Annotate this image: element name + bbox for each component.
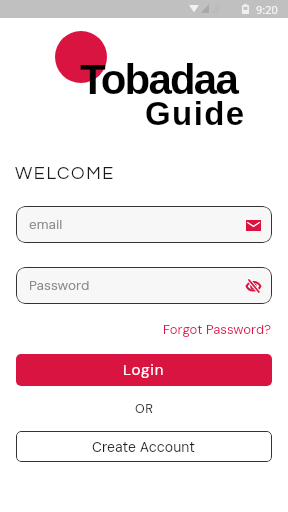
- staticText: 9:20: [256, 2, 278, 17]
- button[interactable]: Password: [16, 267, 272, 304]
- staticText: OR: [135, 400, 154, 417]
- other: Toggle password visibility: [244, 277, 262, 295]
- other: Email: [244, 216, 262, 234]
- staticText: Login: [123, 360, 165, 380]
- button[interactable]: Login: [16, 354, 272, 386]
- button[interactable]: Create Account: [16, 431, 272, 462]
- staticText: email: [29, 216, 63, 234]
- staticText: Tobadaa: [80, 56, 237, 103]
- button[interactable]: Forgot Password?: [163, 321, 272, 338]
- button[interactable]: email: [16, 206, 272, 243]
- staticText: Create Account: [92, 438, 196, 456]
- staticText: Password: [29, 277, 90, 295]
- staticText: Guide: [145, 95, 246, 132]
- staticText: WELCOME: [15, 164, 115, 183]
